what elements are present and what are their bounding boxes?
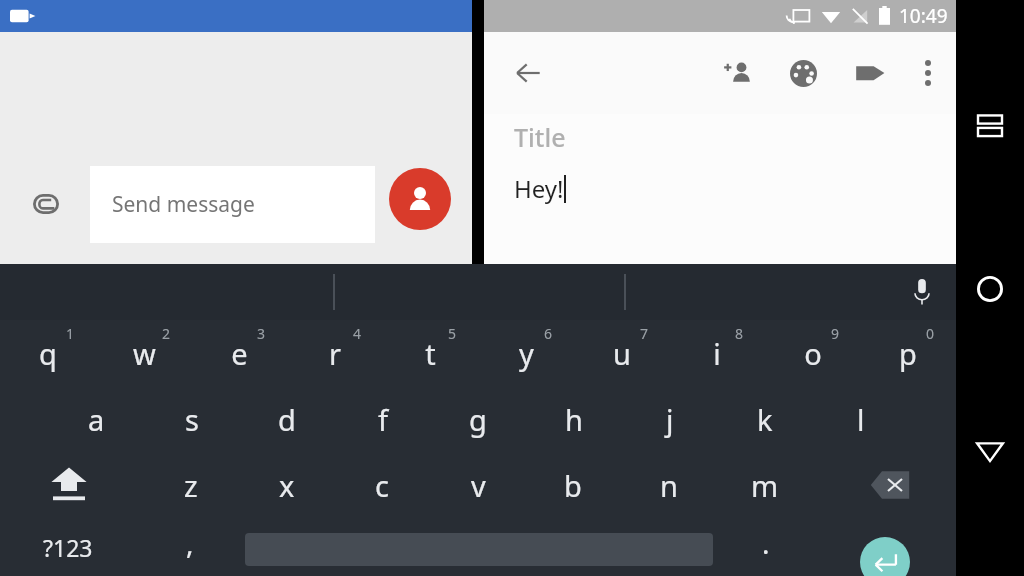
button[interactable]: d bbox=[242, 386, 332, 452]
staticText: t bbox=[425, 334, 436, 373]
button[interactable]: . bbox=[726, 518, 806, 576]
staticText: 9 bbox=[831, 324, 840, 343]
staticText: r bbox=[329, 334, 341, 373]
button[interactable]: g bbox=[433, 386, 523, 452]
button[interactable]: Enter bbox=[860, 537, 910, 576]
staticText: w bbox=[133, 334, 156, 373]
staticText: 10:49 bbox=[899, 3, 948, 29]
button[interactable]: Shift bbox=[24, 452, 114, 518]
staticText: x bbox=[279, 466, 295, 505]
button[interactable]: c bbox=[337, 452, 427, 518]
staticText: 3 bbox=[257, 324, 266, 343]
staticText: z bbox=[184, 466, 198, 505]
button[interactable]: Home bbox=[966, 265, 1014, 313]
staticText: m bbox=[751, 466, 779, 505]
button[interactable]: k bbox=[720, 386, 810, 452]
button[interactable]: Back bbox=[504, 49, 552, 97]
button[interactable]: Back bbox=[966, 427, 1014, 475]
button[interactable]: Voice input bbox=[900, 270, 944, 314]
staticText: q bbox=[39, 334, 57, 373]
button[interactable]: v bbox=[433, 452, 523, 518]
button[interactable]: x bbox=[242, 452, 332, 518]
staticText: n bbox=[660, 466, 678, 505]
button[interactable]: t bbox=[385, 320, 475, 386]
staticText: 0 bbox=[926, 324, 935, 343]
button[interactable]: Label bbox=[846, 49, 894, 97]
button[interactable]: Backspace bbox=[845, 452, 935, 518]
staticText: d bbox=[278, 400, 296, 439]
button[interactable]: Send message bbox=[90, 166, 375, 243]
button[interactable]: m bbox=[720, 452, 810, 518]
button[interactable]: p bbox=[863, 320, 953, 386]
staticText: c bbox=[375, 466, 389, 505]
staticText: 4 bbox=[353, 324, 362, 343]
staticText: o bbox=[804, 334, 822, 373]
staticText: l bbox=[857, 400, 865, 439]
staticText: Title bbox=[514, 120, 566, 154]
button[interactable]: e bbox=[194, 320, 284, 386]
staticText: h bbox=[565, 400, 583, 439]
button[interactable]: , bbox=[148, 518, 232, 576]
button[interactable]: s bbox=[147, 386, 237, 452]
button[interactable]: l bbox=[816, 386, 906, 452]
staticText: j bbox=[666, 400, 674, 439]
staticText: , bbox=[186, 524, 194, 562]
button[interactable]: ?123 bbox=[20, 518, 116, 576]
button[interactable]: q bbox=[3, 320, 93, 386]
button[interactable]: u bbox=[577, 320, 667, 386]
button[interactable]: o bbox=[768, 320, 858, 386]
staticText: e bbox=[231, 334, 248, 373]
staticText: g bbox=[469, 400, 487, 439]
button[interactable]: z bbox=[146, 452, 236, 518]
button[interactable]: Video call bbox=[10, 6, 40, 26]
staticText: ?123 bbox=[43, 532, 93, 563]
button[interactable]: w bbox=[99, 320, 189, 386]
staticText: 2 bbox=[162, 324, 171, 343]
staticText: i bbox=[713, 334, 721, 373]
staticText: a bbox=[88, 400, 105, 439]
button[interactable]: i bbox=[672, 320, 762, 386]
staticText: 5 bbox=[448, 324, 457, 343]
button[interactable]: Voice input bbox=[0, 264, 956, 320]
button[interactable]: Contact bbox=[389, 168, 451, 230]
button[interactable]: Attach bbox=[26, 184, 66, 224]
staticText: Hey! bbox=[514, 172, 564, 205]
button[interactable]: n bbox=[624, 452, 714, 518]
staticText: 7 bbox=[640, 324, 649, 343]
button[interactable]: r bbox=[290, 320, 380, 386]
button[interactable]: a bbox=[51, 386, 141, 452]
staticText: v bbox=[471, 466, 486, 505]
button[interactable]: b bbox=[528, 452, 618, 518]
staticText: 6 bbox=[544, 324, 553, 343]
staticText: 8 bbox=[735, 324, 744, 343]
staticText: u bbox=[613, 334, 631, 373]
button[interactable]: j bbox=[625, 386, 715, 452]
staticText: Send message bbox=[112, 190, 255, 219]
button[interactable]: Add person bbox=[713, 49, 761, 97]
button[interactable]: f bbox=[338, 386, 428, 452]
staticText: 1 bbox=[66, 324, 75, 343]
staticText: f bbox=[378, 400, 388, 439]
button[interactable]: h bbox=[529, 386, 619, 452]
staticText: b bbox=[564, 466, 582, 505]
staticText: . bbox=[762, 524, 770, 562]
button[interactable]: Recent apps bbox=[966, 102, 1014, 150]
staticText: p bbox=[899, 334, 917, 373]
button[interactable]: y bbox=[481, 320, 571, 386]
staticText: s bbox=[185, 400, 199, 439]
staticText: y bbox=[519, 334, 534, 373]
button[interactable]: More options bbox=[906, 51, 950, 95]
button[interactable]: Change color bbox=[779, 49, 827, 97]
staticText: k bbox=[757, 400, 773, 439]
